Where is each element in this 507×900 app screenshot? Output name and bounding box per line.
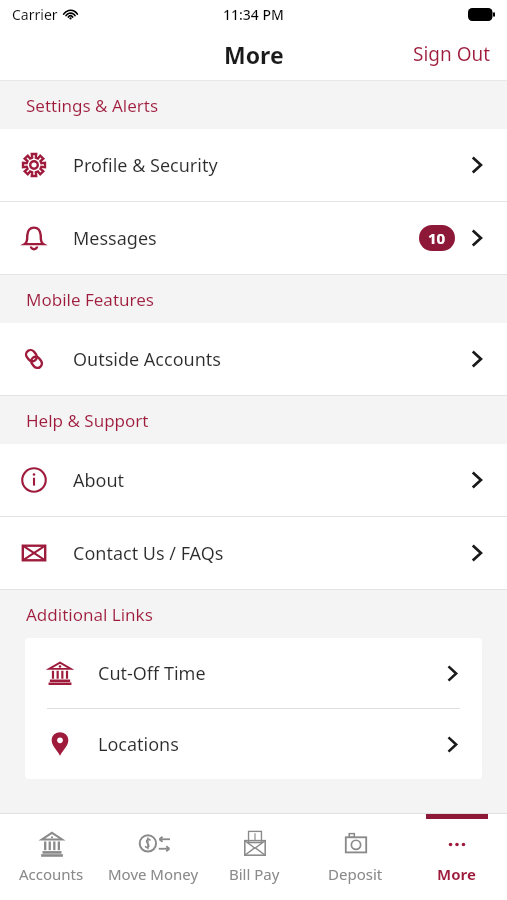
staticText: Additional Links — [26, 603, 153, 626]
staticText: Locations — [98, 732, 179, 757]
staticText: Settings & Alerts — [26, 94, 159, 117]
staticText: 11:34 PM — [223, 5, 284, 24]
staticText: Move Money — [108, 864, 199, 884]
button[interactable]: Bill Pay — [204, 814, 305, 900]
staticText: 10 — [428, 228, 446, 248]
staticText: Carrier — [12, 5, 58, 24]
button[interactable]: About — [0, 444, 507, 516]
button[interactable]: Outside Accounts — [0, 323, 507, 395]
staticText: Profile & Security — [73, 153, 218, 178]
button[interactable]: Sign Out — [397, 31, 507, 77]
button[interactable]: Locations — [25, 709, 482, 779]
button[interactable]: Cut-Off Time — [25, 638, 482, 708]
staticText: Contact Us / FAQs — [73, 541, 224, 566]
staticText: Cut-Off Time — [98, 661, 206, 686]
button[interactable]: Move Money — [102, 814, 204, 900]
staticText: Bill Pay — [229, 864, 280, 884]
staticText: Outside Accounts — [73, 347, 221, 372]
staticText: Mobile Features — [26, 288, 154, 311]
button[interactable]: Contact Us / FAQs — [0, 517, 507, 589]
staticText: Sign Out — [413, 41, 491, 67]
staticText: About — [73, 468, 125, 493]
staticText: Deposit — [328, 864, 383, 884]
staticText: More — [224, 39, 284, 70]
staticText: Messages — [73, 226, 157, 251]
button[interactable]: Profile & Security — [0, 129, 507, 201]
button[interactable]: More — [406, 814, 507, 900]
staticText: Help & Support — [26, 409, 149, 432]
staticText: More — [437, 864, 476, 884]
staticText: Accounts — [19, 864, 84, 884]
button[interactable]: Accounts — [0, 814, 102, 900]
button[interactable]: Messages — [0, 202, 507, 274]
button[interactable]: Deposit — [305, 814, 406, 900]
